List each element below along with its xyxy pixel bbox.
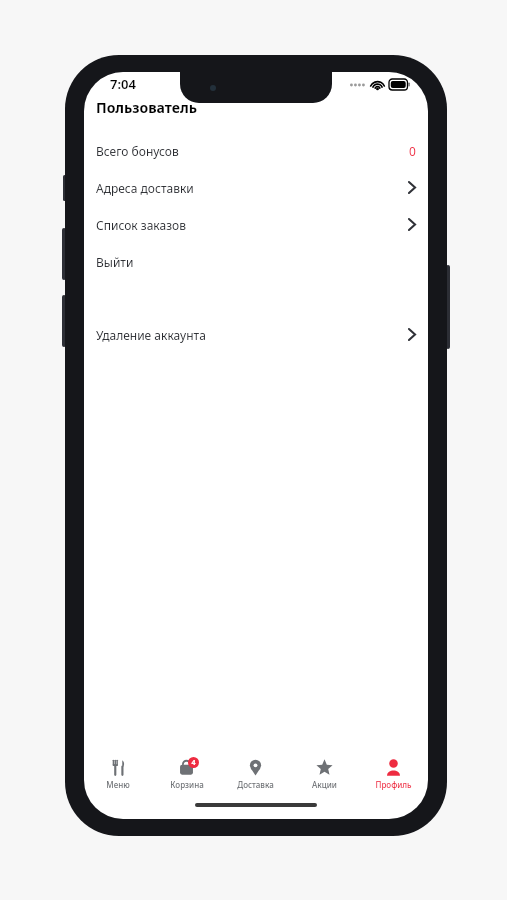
staticText: 4: [191, 758, 196, 768]
button[interactable]: Всего бонусов: [84, 132, 428, 169]
button[interactable]: Доставка: [221, 751, 290, 797]
button[interactable]: Акции: [290, 751, 359, 797]
staticText: Профиль: [375, 779, 412, 790]
button[interactable]: Адреса доставки: [84, 169, 428, 206]
staticText: Корзина: [170, 779, 204, 790]
staticText: Пользователь: [96, 98, 197, 117]
staticText: Адреса доставки: [96, 180, 194, 196]
staticText: Удаление аккаунта: [96, 327, 206, 343]
staticText: Выйти: [96, 254, 134, 270]
button[interactable]: Меню: [84, 751, 152, 797]
button[interactable]: Корзина: [152, 751, 221, 797]
button[interactable]: Удаление аккаунта: [84, 316, 428, 353]
staticText: 0: [409, 143, 416, 159]
staticText: Доставка: [237, 779, 274, 790]
staticText: Акции: [312, 779, 337, 790]
staticText: 7:04: [110, 75, 136, 93]
staticText: Всего бонусов: [96, 143, 179, 159]
button[interactable]: Профиль: [359, 751, 428, 797]
staticText: Меню: [106, 779, 130, 790]
button[interactable]: Список заказов: [84, 206, 428, 243]
button[interactable]: Выйти: [84, 243, 428, 280]
staticText: Список заказов: [96, 217, 186, 233]
